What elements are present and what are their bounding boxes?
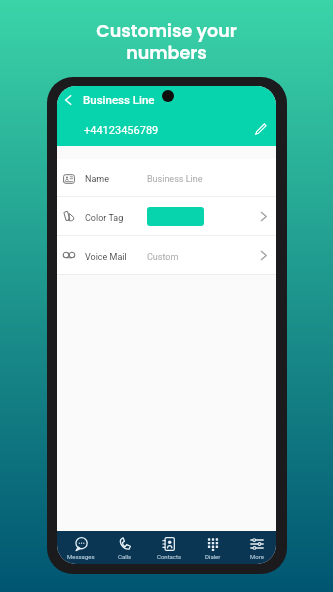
staticText: Calls bbox=[118, 553, 132, 560]
staticText: Color Tag bbox=[85, 213, 124, 224]
staticText: Name bbox=[85, 174, 109, 185]
staticText: More bbox=[250, 553, 264, 560]
staticText: Business Line bbox=[147, 174, 203, 185]
staticText: Voice Mail bbox=[85, 252, 127, 263]
staticText: Customise your numbers bbox=[0, 19, 333, 65]
staticText: Business Line bbox=[83, 93, 155, 106]
staticText: Messages bbox=[67, 553, 95, 560]
button[interactable]: Contacts bbox=[147, 531, 191, 564]
button[interactable]: Dialer bbox=[191, 531, 235, 564]
button[interactable]: Name bbox=[57, 159, 276, 196]
button[interactable]: Color Tag bbox=[57, 197, 276, 235]
button[interactable]: More bbox=[235, 531, 276, 564]
button[interactable]: Back bbox=[59, 91, 77, 109]
button[interactable]: Edit bbox=[252, 121, 270, 139]
staticText: Contacts bbox=[157, 553, 182, 560]
button[interactable]: Messages bbox=[59, 531, 103, 564]
staticText: Dialer bbox=[205, 553, 221, 560]
button[interactable]: Calls bbox=[103, 531, 147, 564]
staticText: +44123456789 bbox=[84, 124, 159, 137]
staticText: Custom bbox=[147, 252, 179, 263]
button[interactable]: Voice Mail bbox=[57, 236, 276, 274]
